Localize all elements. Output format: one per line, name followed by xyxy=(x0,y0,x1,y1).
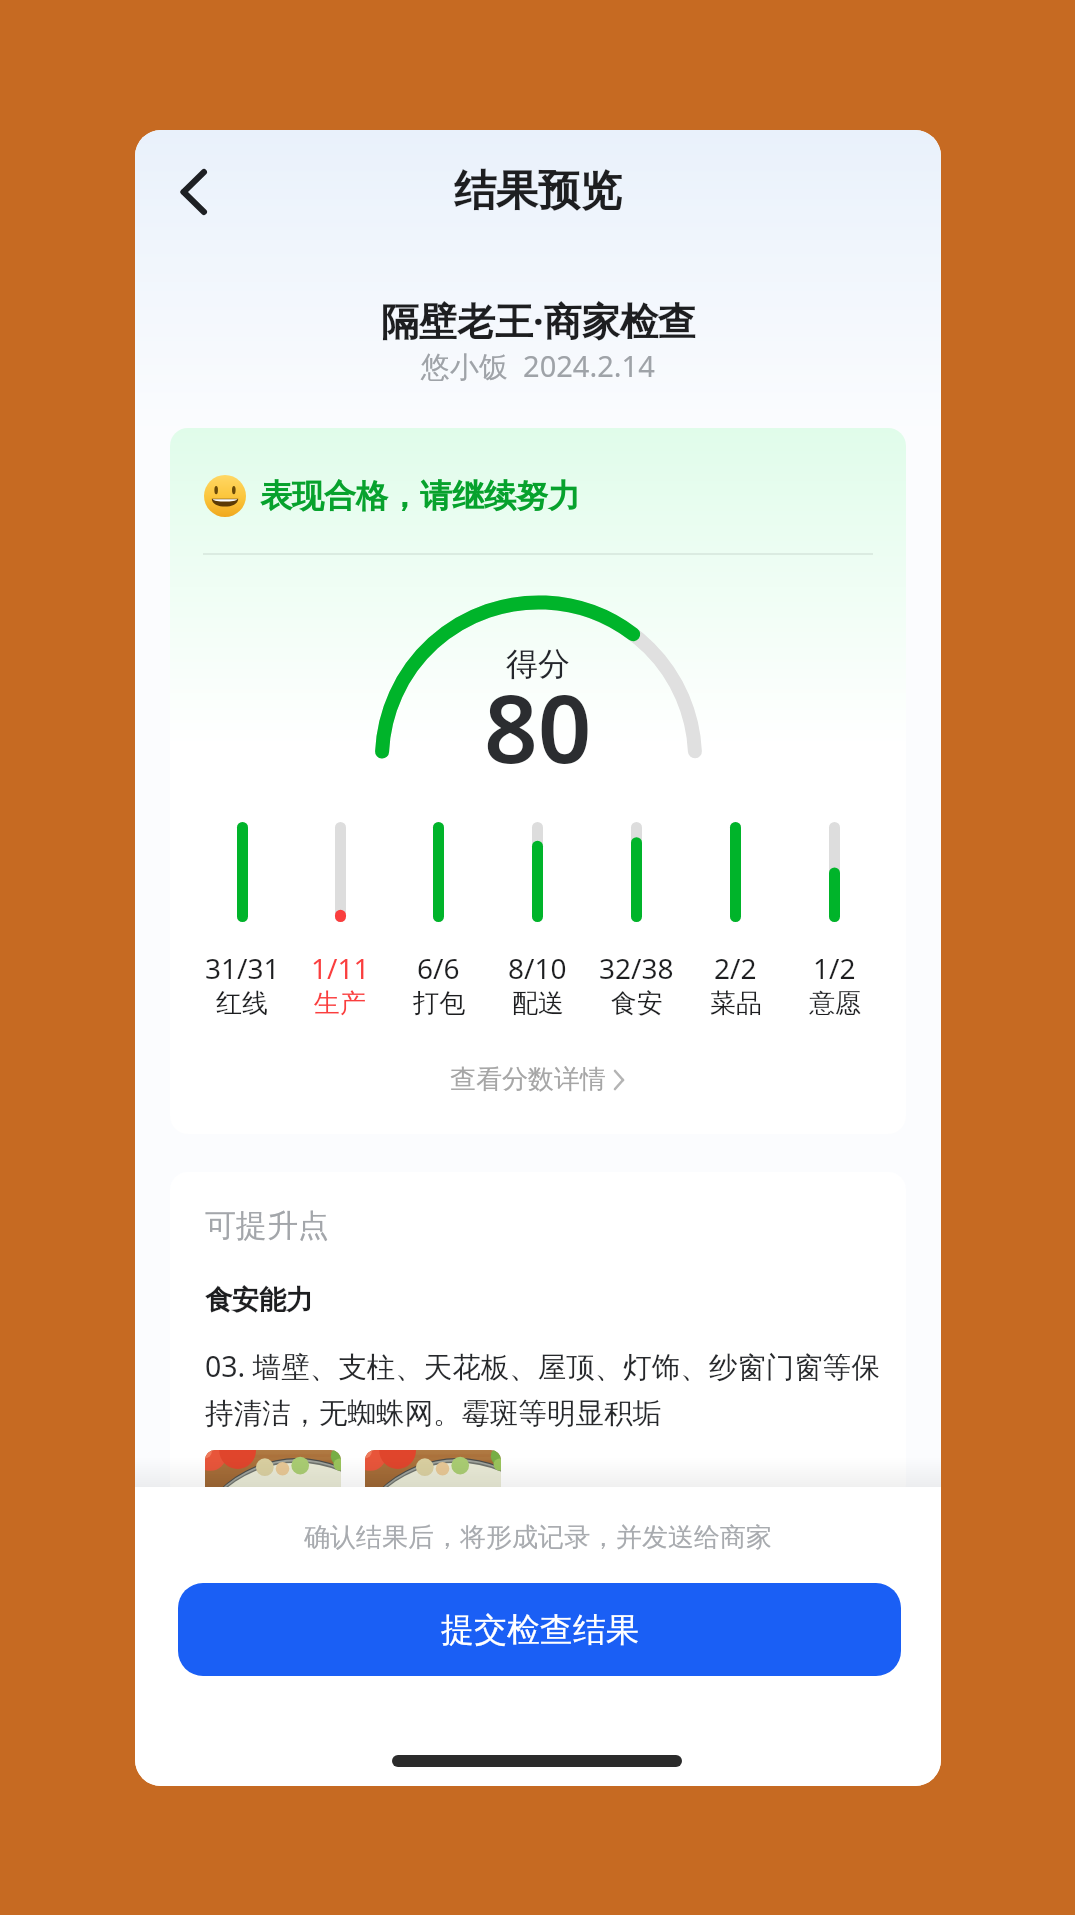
staticText: 得分 xyxy=(506,644,570,684)
staticText: 隔壁老王·商家检查 xyxy=(381,294,696,346)
staticText: 菜品 xyxy=(710,987,762,1020)
staticText: 结果预览 xyxy=(454,165,622,218)
button[interactable]: 提交检查结果 xyxy=(178,1583,901,1676)
staticText: 意愿 xyxy=(809,987,861,1020)
staticText: 表现合格，请继续努力 xyxy=(260,476,580,516)
staticText: 8/10 xyxy=(508,949,567,987)
staticText: 提交检查结果 xyxy=(441,1609,639,1651)
staticText: 80 xyxy=(484,663,592,791)
staticText: 31/31 xyxy=(205,949,280,987)
staticText: 确认结果后，将形成记录，并发送给商家 xyxy=(304,1521,772,1554)
button[interactable]: Back xyxy=(149,150,245,232)
staticText: 食安 xyxy=(611,987,663,1020)
staticText: 生产 xyxy=(314,987,366,1020)
staticText: 2/2 xyxy=(714,949,757,987)
staticText: 打包 xyxy=(413,987,465,1020)
staticText: 红线 xyxy=(216,987,268,1020)
staticText: 食安能力 xyxy=(205,1283,313,1317)
button[interactable]: 查看分数详情 xyxy=(170,1050,906,1108)
staticText: 查看分数详情 xyxy=(450,1063,606,1096)
staticText: 03. 墙壁、支柱、天花板、屋顶、灯饰、纱窗门窗等保持清洁，无蜘蛛网。霉斑等明显… xyxy=(205,1347,885,1432)
staticText: 32/38 xyxy=(599,949,674,987)
staticText: 1/2 xyxy=(813,949,856,987)
staticText: 可提升点 xyxy=(205,1206,329,1245)
staticText: 悠小饭 2024.2.14 xyxy=(421,346,655,386)
staticText: 配送 xyxy=(512,987,564,1020)
staticText: 1/11 xyxy=(311,949,370,987)
staticText: 6/6 xyxy=(417,949,460,987)
